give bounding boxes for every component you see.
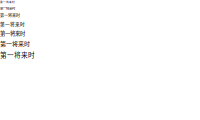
staticText: 第一将来时 — [0, 20, 25, 27]
staticText: 第一将来时 — [0, 13, 20, 18]
staticText: 第一将来时 — [0, 29, 25, 37]
staticText: 第一将来时 — [0, 39, 30, 48]
staticText: 第一将来时 — [0, 50, 35, 59]
staticText: 第一将来时 — [0, 0, 15, 4]
staticText: 第一将来时 — [0, 6, 15, 11]
